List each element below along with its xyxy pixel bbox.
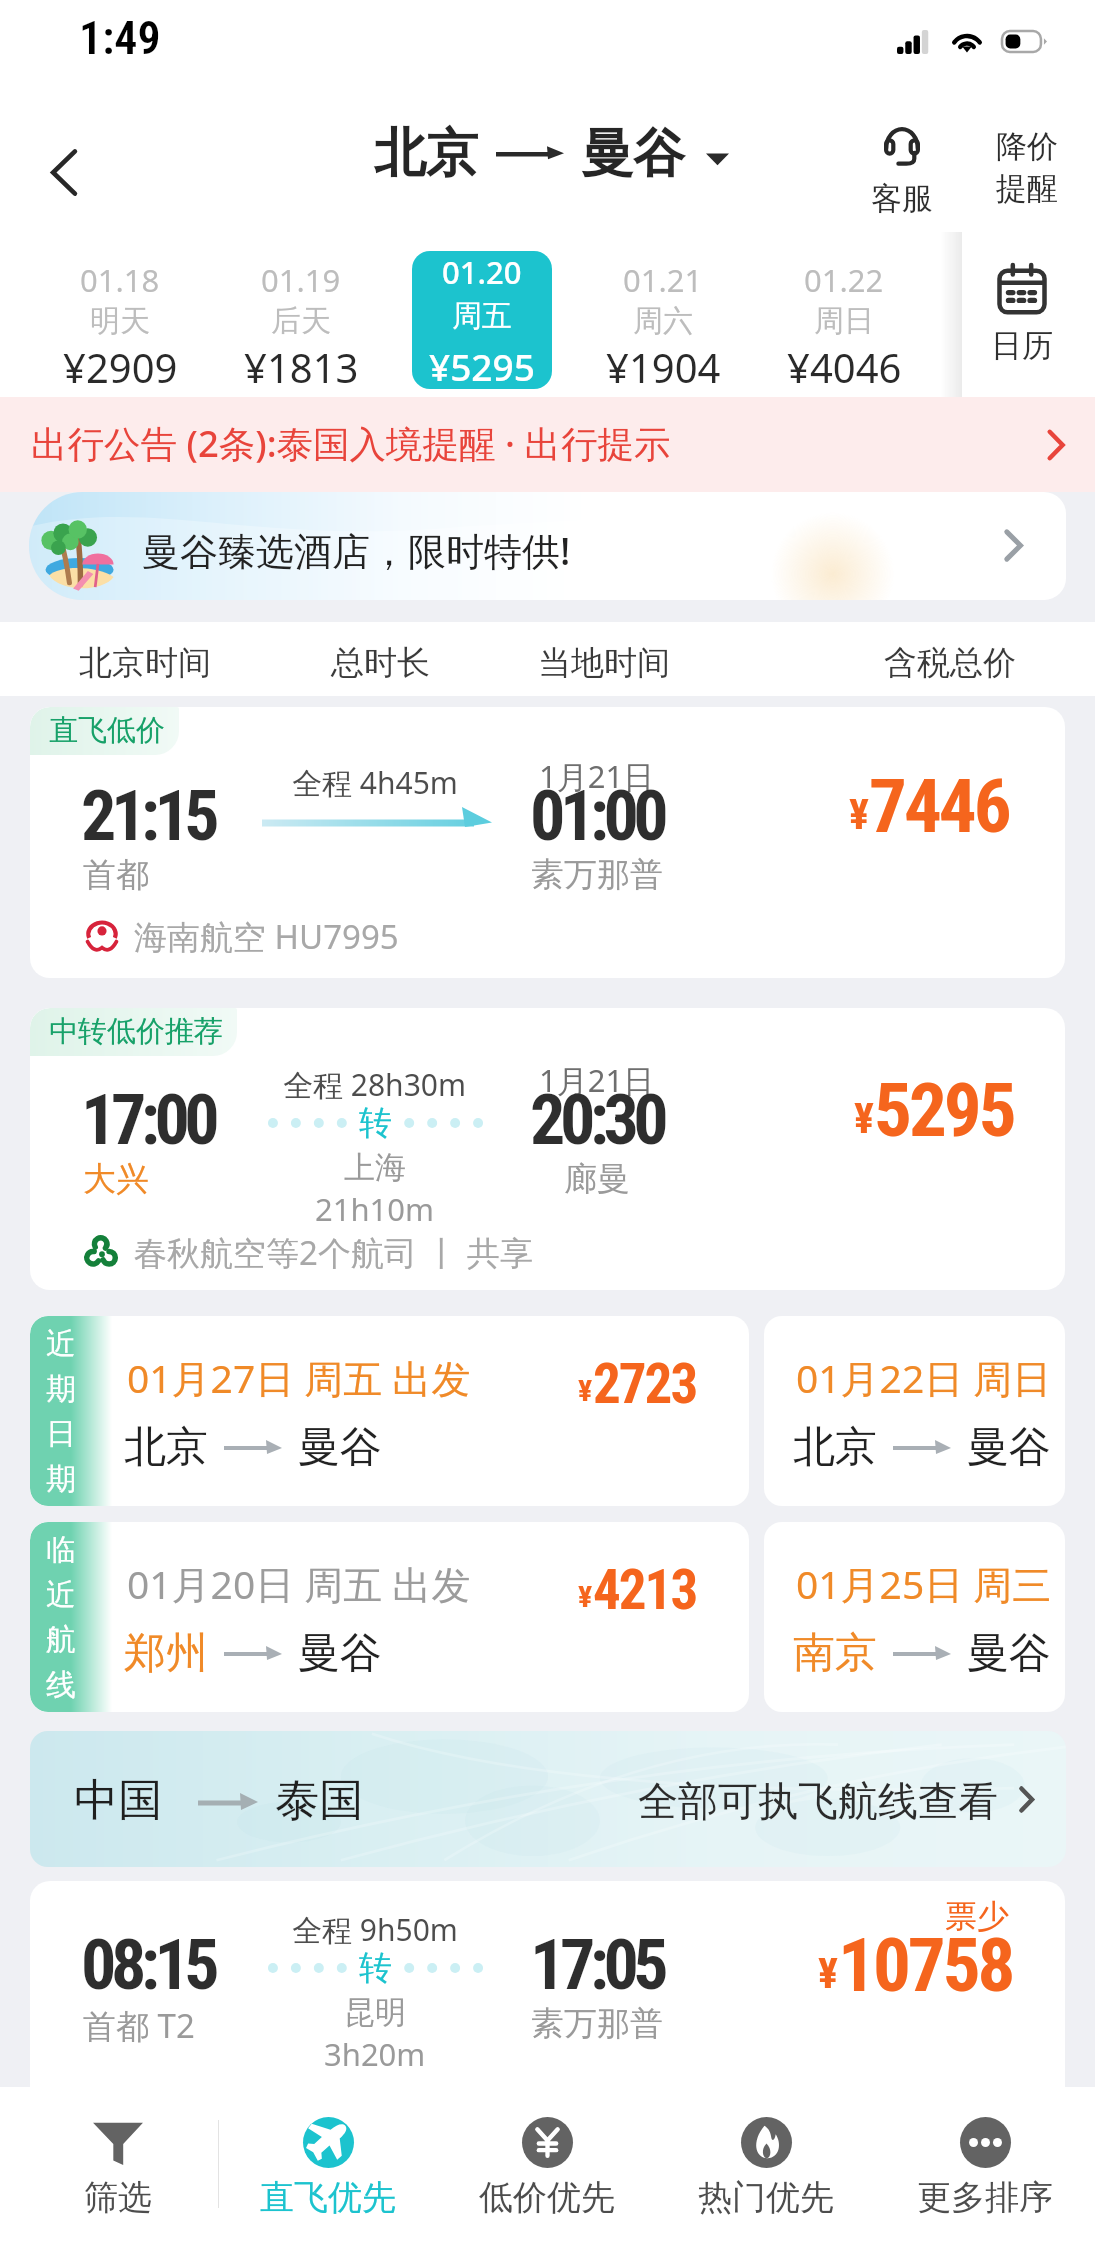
staticText: 01.18: [80, 259, 160, 301]
staticText: 周日: [814, 302, 874, 340]
staticText: 01:00: [530, 775, 664, 857]
button[interactable]: 临: [30, 1522, 749, 1712]
staticText: 北京: [793, 1421, 877, 1474]
staticText: ¥: [578, 1579, 593, 1614]
staticText: 南京: [793, 1627, 877, 1680]
staticText: 筛选: [84, 2176, 152, 2217]
staticText: 航: [46, 1621, 76, 1659]
staticText: 01月25日 周三: [796, 1557, 1052, 1610]
staticText: 曼谷: [581, 121, 685, 187]
button[interactable]: 01.18: [40, 251, 200, 389]
button[interactable]: 直飞低价: [30, 707, 1065, 978]
staticText: 转: [359, 1102, 392, 1144]
button[interactable]: 01.22: [764, 251, 924, 389]
staticText: 1:49: [79, 11, 161, 65]
staticText: 当地时间: [538, 642, 670, 684]
staticText: 08:15: [81, 1924, 215, 2006]
staticText: 近: [46, 1576, 76, 1614]
button[interactable]: 中国: [30, 1731, 1066, 1867]
staticText: 01.22: [804, 259, 884, 301]
staticText: 2723: [593, 1352, 697, 1416]
staticText: 直飞低价: [49, 712, 165, 749]
button[interactable]: 客服: [845, 88, 957, 198]
button[interactable]: 降价: [968, 98, 1086, 228]
staticText: 提醒: [996, 169, 1058, 208]
staticText: 01月27日 周五 出发: [127, 1351, 471, 1404]
staticText: 线: [46, 1666, 76, 1704]
button[interactable]: 01月25日 周三: [764, 1522, 1065, 1712]
staticText: 日历: [991, 326, 1053, 365]
staticText: 全程 28h30m: [283, 1064, 467, 1105]
staticText: 昆明: [344, 1993, 406, 2032]
staticText: 大兴: [83, 1158, 149, 1200]
staticText: 全程 9h50m: [292, 1909, 458, 1950]
button[interactable]: 低价优先: [442, 2087, 652, 2217]
staticText: ¥: [849, 790, 869, 839]
button[interactable]: 曼谷臻选酒店，限时特供!: [29, 492, 1066, 600]
staticText: 01月22日 周日: [796, 1351, 1052, 1404]
staticText: 21:15: [81, 775, 215, 857]
button[interactable]: Back: [8, 116, 120, 228]
staticText: ¥: [854, 1094, 874, 1143]
button[interactable]: 01月22日 周日: [764, 1316, 1065, 1506]
staticText: 北京: [124, 1421, 208, 1474]
staticText: 10758: [838, 1921, 1013, 2009]
staticText: 直飞优先: [260, 2176, 396, 2217]
staticText: 1月21日: [539, 755, 655, 797]
staticText: 素万那普: [531, 854, 663, 896]
staticText: 降价: [996, 127, 1058, 166]
staticText: ¥: [578, 1373, 593, 1408]
staticText: 明天: [90, 302, 150, 340]
button[interactable]: 08:15: [30, 1881, 1065, 2141]
staticText: 01.20: [442, 251, 522, 293]
staticText: 上海: [344, 1148, 406, 1187]
staticText: 总时长: [331, 642, 430, 684]
staticText: 曼谷: [967, 1627, 1051, 1680]
staticText: 01月20日 周五 出发: [127, 1557, 471, 1610]
staticText: 更多排序: [917, 2176, 1053, 2217]
staticText: 北京时间: [79, 642, 211, 684]
button[interactable]: 近: [30, 1316, 749, 1506]
staticText: ¥2909: [63, 340, 178, 389]
staticText: 1月21日: [539, 1059, 655, 1101]
staticText: 01.19: [261, 259, 341, 301]
button[interactable]: 直飞优先: [223, 2087, 433, 2217]
staticText: 临: [46, 1531, 76, 1569]
staticText: 春秋航空等2个航司 丨 共享: [134, 1230, 534, 1275]
staticText: 21h10m: [315, 1188, 435, 1230]
staticText: 中转低价推荐: [49, 1013, 223, 1050]
staticText: 出行公告 (2条):泰国入境提醒 · 出行提示: [31, 418, 1048, 468]
staticText: 泰国: [275, 1773, 363, 1828]
button[interactable]: 日历: [962, 232, 1082, 397]
button[interactable]: 更多排序: [880, 2087, 1090, 2217]
button[interactable]: 北京: [374, 121, 729, 187]
staticText: 北京: [374, 121, 478, 187]
button[interactable]: 01.19: [221, 251, 381, 389]
staticText: 廊曼: [564, 1158, 630, 1200]
staticText: 曼谷: [298, 1421, 382, 1474]
button[interactable]: 01.21: [583, 251, 743, 389]
staticText: 郑州: [124, 1627, 208, 1680]
button[interactable]: 筛选: [20, 2087, 216, 2217]
staticText: 期: [46, 1460, 76, 1498]
staticText: 曼谷臻选酒店，限时特供!: [142, 524, 571, 576]
staticText: 全程 4h45m: [292, 762, 458, 803]
staticText: ¥: [818, 1949, 838, 1998]
staticText: 近: [46, 1325, 76, 1363]
staticText: ¥1904: [606, 340, 721, 389]
button[interactable]: 出行公告 (2条):泰国入境提醒 · 出行提示: [0, 397, 1095, 492]
staticText: 票少: [945, 1896, 1009, 1936]
staticText: 4213: [593, 1558, 697, 1622]
button[interactable]: 热门优先: [661, 2087, 871, 2217]
staticText: 7446: [869, 762, 1009, 850]
staticText: 17:00: [81, 1079, 215, 1161]
button[interactable]: 01.20: [412, 251, 552, 389]
staticText: 首都 T2: [83, 2003, 195, 2048]
staticText: 素万那普: [531, 2003, 663, 2045]
staticText: 转: [359, 1947, 392, 1989]
staticText: 5295: [874, 1066, 1014, 1154]
staticText: ¥1813: [244, 340, 359, 389]
button[interactable]: 中转低价推荐: [30, 1008, 1065, 1290]
staticText: 含税总价: [884, 642, 1016, 684]
staticText: 低价优先: [479, 2176, 615, 2217]
